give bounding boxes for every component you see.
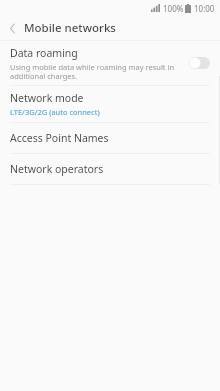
staticText: Using mobile data while roaming may resu…: [10, 62, 183, 81]
staticText: 10:00: [194, 3, 215, 14]
staticText: Access Point Names: [10, 131, 109, 145]
staticText: Network mode: [10, 91, 84, 105]
staticText: 100%: [163, 3, 184, 14]
staticText: Network operators: [10, 162, 104, 176]
button[interactable]: Data roaming toggle: [189, 57, 210, 69]
staticText: Mobile networks: [24, 20, 116, 36]
button[interactable]: Network mode: [0, 86, 220, 122]
button[interactable]: Network operators: [0, 154, 220, 184]
staticText: Data roaming: [10, 46, 78, 60]
button[interactable]: Data roaming: [0, 41, 220, 85]
button[interactable]: Access Point Names: [0, 123, 220, 153]
button[interactable]: Back: [0, 16, 24, 40]
staticText: LTE/3G/2G (auto connect): [10, 107, 100, 117]
